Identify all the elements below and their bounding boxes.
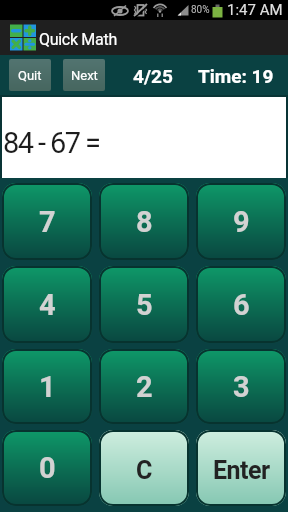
staticText: 1:47 AM — [227, 1, 283, 19]
button[interactable]: 9 — [196, 183, 286, 260]
button[interactable]: 7 — [2, 183, 92, 260]
button[interactable]: C — [99, 430, 189, 506]
staticText: 1 — [39, 370, 56, 404]
staticText: 84 - 67 = — [3, 126, 100, 160]
button[interactable]: 3 — [196, 349, 286, 424]
button[interactable]: 0 — [2, 430, 92, 506]
staticText: Quit — [18, 68, 42, 83]
button[interactable]: 4 — [2, 266, 92, 343]
staticText: 7 — [39, 205, 56, 239]
button[interactable]: Enter — [196, 430, 286, 506]
staticText: 6 — [233, 288, 250, 322]
staticText: 0 — [39, 451, 56, 485]
button[interactable]: Next — [63, 59, 105, 91]
staticText: 2 — [136, 370, 153, 404]
button[interactable]: 1 — [2, 349, 92, 424]
button[interactable]: 5 — [99, 266, 189, 343]
staticText: 8 — [136, 205, 153, 239]
staticText: Next — [71, 68, 98, 83]
staticText: 4/25 — [133, 65, 173, 87]
staticText: Quick Math — [39, 30, 117, 49]
staticText: 5 — [136, 288, 153, 322]
staticText: 80% — [191, 4, 210, 16]
button[interactable]: 2 — [99, 349, 189, 424]
button[interactable]: 6 — [196, 266, 286, 343]
button[interactable]: 8 — [99, 183, 189, 260]
staticText: 3 — [233, 370, 250, 404]
staticText: 4 — [39, 288, 56, 322]
staticText: 9 — [233, 205, 250, 239]
staticText: C — [136, 456, 152, 485]
staticText: Time: 19 — [198, 65, 274, 87]
staticText: Enter — [213, 456, 270, 485]
button[interactable]: Quit — [9, 59, 51, 91]
